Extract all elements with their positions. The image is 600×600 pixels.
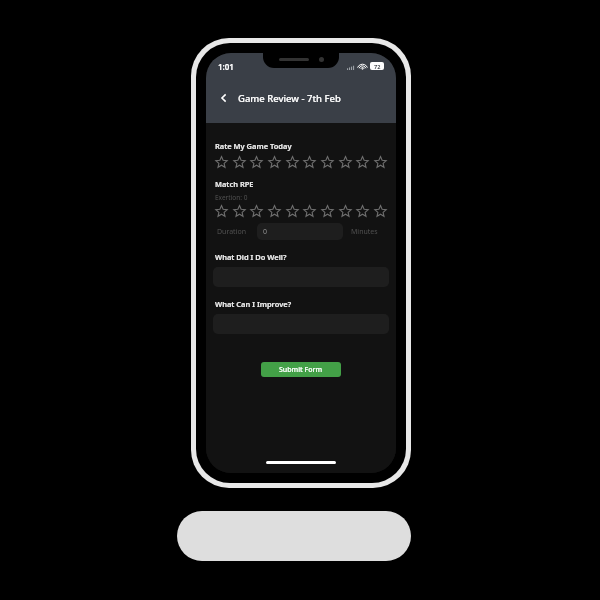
button[interactable]: Rate 6 bbox=[303, 156, 316, 169]
button[interactable]: Rate 8 bbox=[339, 156, 352, 169]
staticText: 1:01 bbox=[218, 61, 234, 72]
staticText: Rate My Game Today bbox=[215, 141, 292, 151]
button[interactable]: Rate 1 bbox=[215, 156, 228, 169]
button[interactable]: Rate 5 bbox=[286, 205, 299, 218]
staticText: Game Review - 7th Feb bbox=[238, 92, 341, 105]
button[interactable]: Rate 9 bbox=[356, 205, 369, 218]
button[interactable]: Rate 6 bbox=[303, 205, 316, 218]
button[interactable]: Rate 9 bbox=[356, 156, 369, 169]
staticText: 0 bbox=[263, 227, 268, 237]
button[interactable]: Rate 3 bbox=[250, 156, 263, 169]
button[interactable]: Rate 2 bbox=[233, 156, 246, 169]
staticText: What Did I Do Well? bbox=[215, 252, 287, 262]
button[interactable]: Rate 7 bbox=[321, 156, 334, 169]
button[interactable]: Rate 8 bbox=[339, 205, 352, 218]
staticText: Submit Form bbox=[279, 365, 323, 375]
button[interactable]: 0 bbox=[257, 223, 343, 240]
staticText: Duration bbox=[217, 227, 247, 237]
button[interactable]: Back bbox=[214, 88, 234, 108]
staticText: What Can I Improve? bbox=[215, 299, 292, 309]
button[interactable]: Rate 2 bbox=[233, 205, 246, 218]
staticText: Exertion: 0 bbox=[215, 193, 248, 202]
button[interactable]: Rate 7 bbox=[321, 205, 334, 218]
button[interactable]: Rate 1 bbox=[215, 205, 228, 218]
staticText: Match RPE bbox=[215, 179, 254, 189]
button[interactable]: Rate 3 bbox=[250, 205, 263, 218]
button[interactable]: Rate 5 bbox=[286, 156, 299, 169]
button[interactable]: Rate 10 bbox=[374, 156, 387, 169]
staticText: 72 bbox=[374, 63, 381, 70]
button[interactable]: Rate 4 bbox=[268, 156, 281, 169]
button[interactable]: Rate 4 bbox=[268, 205, 281, 218]
button[interactable]: Rate 10 bbox=[374, 205, 387, 218]
staticText: Minutes bbox=[351, 227, 378, 237]
button[interactable]: Submit Form bbox=[261, 362, 341, 377]
